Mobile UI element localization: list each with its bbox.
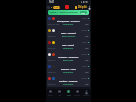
staticText: Strasbourg - Monaco bbox=[57, 20, 80, 23]
staticText: +12 bbox=[85, 59, 89, 62]
staticText: 9:41 bbox=[49, 0, 55, 4]
staticText: Auxerre - Toulouse bbox=[58, 56, 79, 59]
staticText: 20:00 bbox=[82, 41, 87, 44]
button[interactable]: Live bbox=[55, 90, 64, 102]
staticText: Cote Boost bbox=[63, 71, 74, 74]
staticText: Promos bbox=[74, 94, 81, 96]
staticText: Dans 6 h bbox=[48, 83, 56, 86]
staticText: +12 bbox=[85, 35, 89, 38]
staticText: Rennes - Lens bbox=[61, 68, 76, 71]
staticText: +12 bbox=[85, 23, 89, 26]
staticText: VOIR bbox=[81, 12, 86, 14]
staticText: 20:00 bbox=[82, 53, 87, 56]
staticText: 0,00 € bbox=[54, 6, 60, 9]
staticText: Cote Boost bbox=[63, 23, 74, 26]
staticText: Live bbox=[58, 94, 62, 96]
button[interactable]: Live bbox=[65, 5, 69, 9]
staticText: +12 bbox=[85, 83, 89, 86]
staticText: Dans 3 h bbox=[48, 47, 56, 50]
button[interactable]: 20:00 bbox=[47, 75, 90, 87]
button[interactable]: Promos bbox=[73, 90, 82, 102]
staticText: Compte bbox=[83, 94, 90, 96]
staticText: Lille - Brest bbox=[62, 44, 75, 47]
staticText: +12 bbox=[85, 47, 89, 50]
button[interactable]: Paris bbox=[64, 90, 73, 102]
staticText: Dans 45 min bbox=[48, 23, 60, 26]
button[interactable]: 20:00 bbox=[47, 39, 90, 51]
button[interactable]: 0,00 € bbox=[53, 6, 60, 9]
staticText: LIGUE 1 · MULTIPLICATEUR bbox=[50, 11, 78, 14]
staticText: 20:00 bbox=[82, 17, 87, 20]
staticText: +12 bbox=[85, 71, 89, 74]
button[interactable]: LIGUE 1 · MULTIPLICATEUR bbox=[48, 10, 89, 15]
staticText: Dans 4 h bbox=[48, 59, 56, 62]
staticText: Cote Boost bbox=[63, 83, 74, 86]
staticText: Boost de Gain bbox=[62, 35, 76, 38]
button[interactable]: Menu bbox=[47, 6, 50, 9]
staticText: 20:00 bbox=[82, 65, 87, 68]
staticText: Nantes - Auxerre bbox=[59, 80, 78, 83]
staticText: Sports bbox=[48, 94, 54, 96]
button[interactable]: Account bbox=[88, 6, 91, 9]
button[interactable]: 20:00 bbox=[47, 15, 90, 27]
button[interactable]: Compte bbox=[82, 90, 91, 102]
staticText: Dans 2 h bbox=[48, 35, 56, 38]
button[interactable]: Sports bbox=[46, 90, 55, 102]
staticText: Dans 5 h bbox=[48, 71, 56, 74]
staticText: Nice - Lorient bbox=[61, 32, 76, 35]
staticText: Boost Gain bbox=[63, 59, 74, 62]
button[interactable]: 20:00 bbox=[47, 63, 90, 75]
staticText: 20:00 bbox=[82, 29, 87, 32]
staticText: Paris bbox=[67, 94, 71, 96]
button[interactable]: 20:00 bbox=[47, 51, 90, 63]
button[interactable]: 20:00 bbox=[47, 27, 90, 39]
staticText: Dépôt bbox=[78, 5, 87, 9]
staticText: Cote Boost bbox=[63, 47, 74, 50]
staticText: 20:00 bbox=[82, 77, 87, 80]
